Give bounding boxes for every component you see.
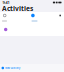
button[interactable]: New Activity xyxy=(0,64,22,71)
staticText: 9:41 xyxy=(2,0,9,5)
staticText: New Activity xyxy=(5,66,20,70)
staticText: Activities xyxy=(2,4,33,13)
